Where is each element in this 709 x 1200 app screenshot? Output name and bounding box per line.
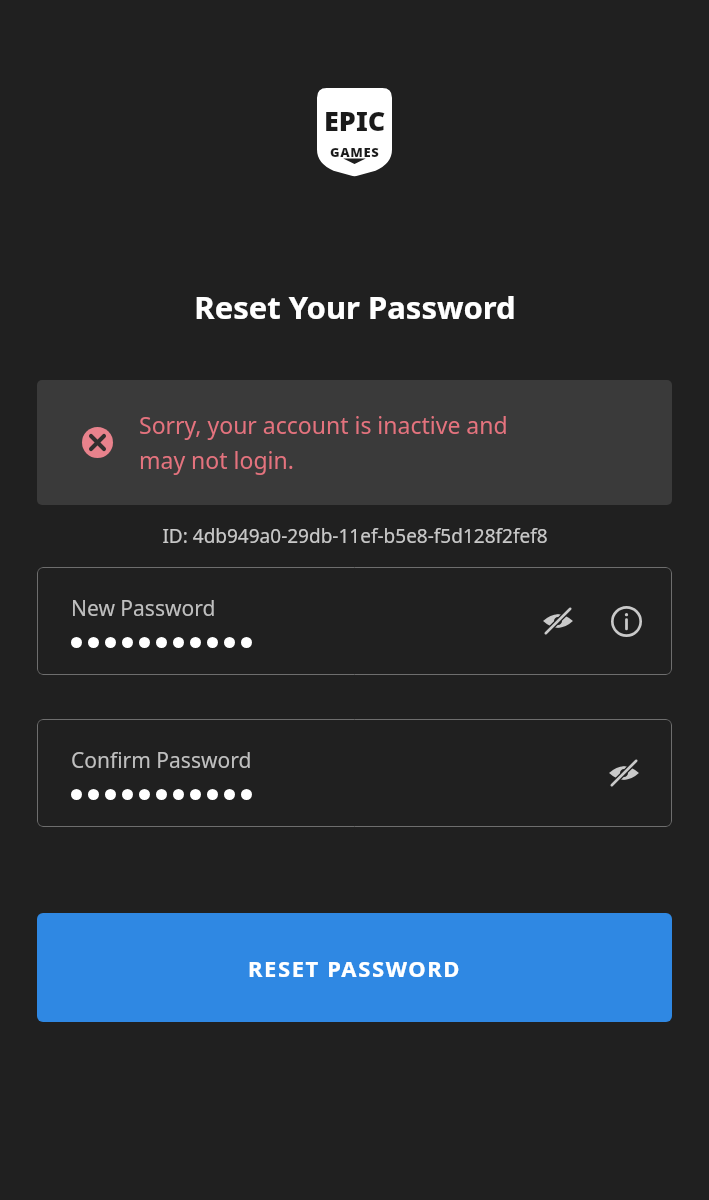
staticText: RESET PASSWORD — [248, 953, 462, 983]
button[interactable]: Sorry, your account is inactive and may … — [37, 380, 672, 505]
staticText: GAMES — [330, 143, 380, 161]
button[interactable]: Confirm Password — [37, 719, 672, 827]
button[interactable]: New Password — [37, 567, 672, 675]
staticText: Sorry, your account is inactive and may … — [139, 409, 508, 476]
button[interactable]: Toggle password visibility — [602, 751, 646, 795]
button[interactable]: Toggle password visibility — [536, 599, 580, 643]
staticText: EPIC — [324, 102, 386, 139]
staticText: Confirm Password — [71, 746, 252, 775]
staticText: Reset Your Password — [194, 286, 516, 328]
staticText: ID: 4db949a0-29db-11ef-b5e8-f5d128f2fef8 — [162, 523, 548, 549]
staticText: New Password — [71, 594, 216, 623]
button[interactable]: RESET PASSWORD — [37, 913, 672, 1022]
button[interactable]: Password requirements info — [606, 601, 646, 641]
